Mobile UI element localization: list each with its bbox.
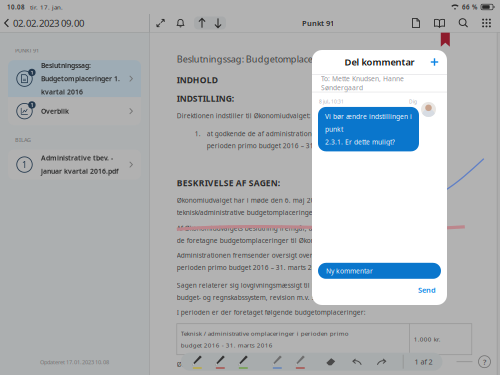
button[interactable]: Pen: [186, 355, 209, 369]
staticText: Opdateret 17.01.2023 10.08: [40, 358, 109, 366]
staticText: I perioden er der foretaget følgende bud…: [177, 308, 366, 317]
button[interactable]: Send: [414, 283, 440, 297]
button[interactable]: 1: [8, 60, 141, 97]
button[interactable]: Document: [410, 16, 422, 30]
staticText: Økonomiudvalget har i møde den 6. maj 20…: [177, 196, 420, 217]
button[interactable]: Pen: [209, 355, 232, 369]
staticText: 1.000 kr.: [414, 335, 441, 343]
button[interactable]: Search: [457, 16, 470, 29]
button[interactable]: Pen: [266, 355, 289, 369]
button[interactable]: 02.02.2023 09.00: [0, 14, 90, 32]
button[interactable]: Previous item: [194, 16, 210, 29]
button[interactable]: Add recipient: [427, 54, 442, 69]
staticText: 1.: [195, 129, 201, 138]
staticText: Overblik: [41, 106, 69, 116]
staticText: Send: [418, 285, 436, 295]
staticText: Direktionen indstiller til Økonomiudvalg…: [177, 111, 311, 120]
staticText: Administrationen fremsender oversigt ove…: [177, 251, 428, 272]
staticText: 1: [22, 159, 27, 171]
staticText: BESKRIVELSE AF SAGEN:: [177, 177, 280, 189]
button[interactable]: Pen: [289, 355, 312, 369]
button[interactable]: Redo: [375, 356, 389, 367]
staticText: Punkt 91: [302, 18, 334, 28]
staticText: tir. 17. jan.: [30, 3, 63, 11]
staticText: PUNKT 91: [15, 47, 39, 54]
staticText: ?: [483, 356, 486, 367]
staticText: Administrative tbev. - januar kvartal 20…: [41, 153, 119, 176]
button[interactable]: Expand: [154, 16, 167, 29]
staticText: 66 %: [462, 3, 477, 11]
button[interactable]: Pen: [232, 355, 255, 369]
staticText: 1 af 2: [414, 357, 432, 367]
staticText: To: Mette Knudsen, Hanne Søndergaard: [321, 74, 404, 92]
staticText: Beslutningssag: Budgetomplaceringer 1. k…: [41, 61, 120, 97]
button[interactable]: Notifications: [174, 16, 187, 30]
staticText: Beslutningssag: Budgetomplaceringer 1. k…: [177, 53, 402, 65]
button[interactable]: Book: [432, 16, 447, 29]
staticText: Økonomiudvalg: [177, 360, 226, 369]
staticText: 1: [30, 101, 33, 109]
staticText: BILAG: [15, 136, 31, 143]
staticText: Teknisk / administrative omplaceringer i…: [181, 329, 349, 349]
button[interactable]: Help: [478, 356, 490, 368]
staticText: Del kommentar: [344, 56, 414, 68]
staticText: 10.08: [7, 3, 25, 11]
staticText: Vi bør ændre indstillingen i punkt 2.3.1…: [325, 112, 412, 146]
staticText: INDHOLD: [177, 74, 218, 86]
button[interactable]: Undo: [350, 356, 364, 367]
staticText: 02.02.2023 09.00: [13, 16, 84, 30]
button[interactable]: 1: [8, 97, 141, 125]
button[interactable]: Eraser: [324, 356, 338, 368]
button[interactable]: 1: [8, 150, 141, 180]
staticText: Af Økonomiudvalgets beslutning fremgår, …: [177, 224, 433, 245]
staticText: 8 jul., 10:31: [319, 98, 344, 105]
staticText: Dig: [409, 98, 417, 105]
staticText: at godkende de af administrationen fores…: [207, 129, 438, 150]
staticText: Sagen relaterer sig lovgivningsmæssigt t…: [177, 281, 425, 302]
staticText: INDSTILLING:: [177, 93, 234, 104]
button[interactable]: Next item: [210, 16, 226, 29]
button[interactable]: Thumbnails: [480, 16, 493, 29]
staticText: 1: [30, 69, 33, 76]
staticText: Ny kommentar: [326, 266, 373, 275]
